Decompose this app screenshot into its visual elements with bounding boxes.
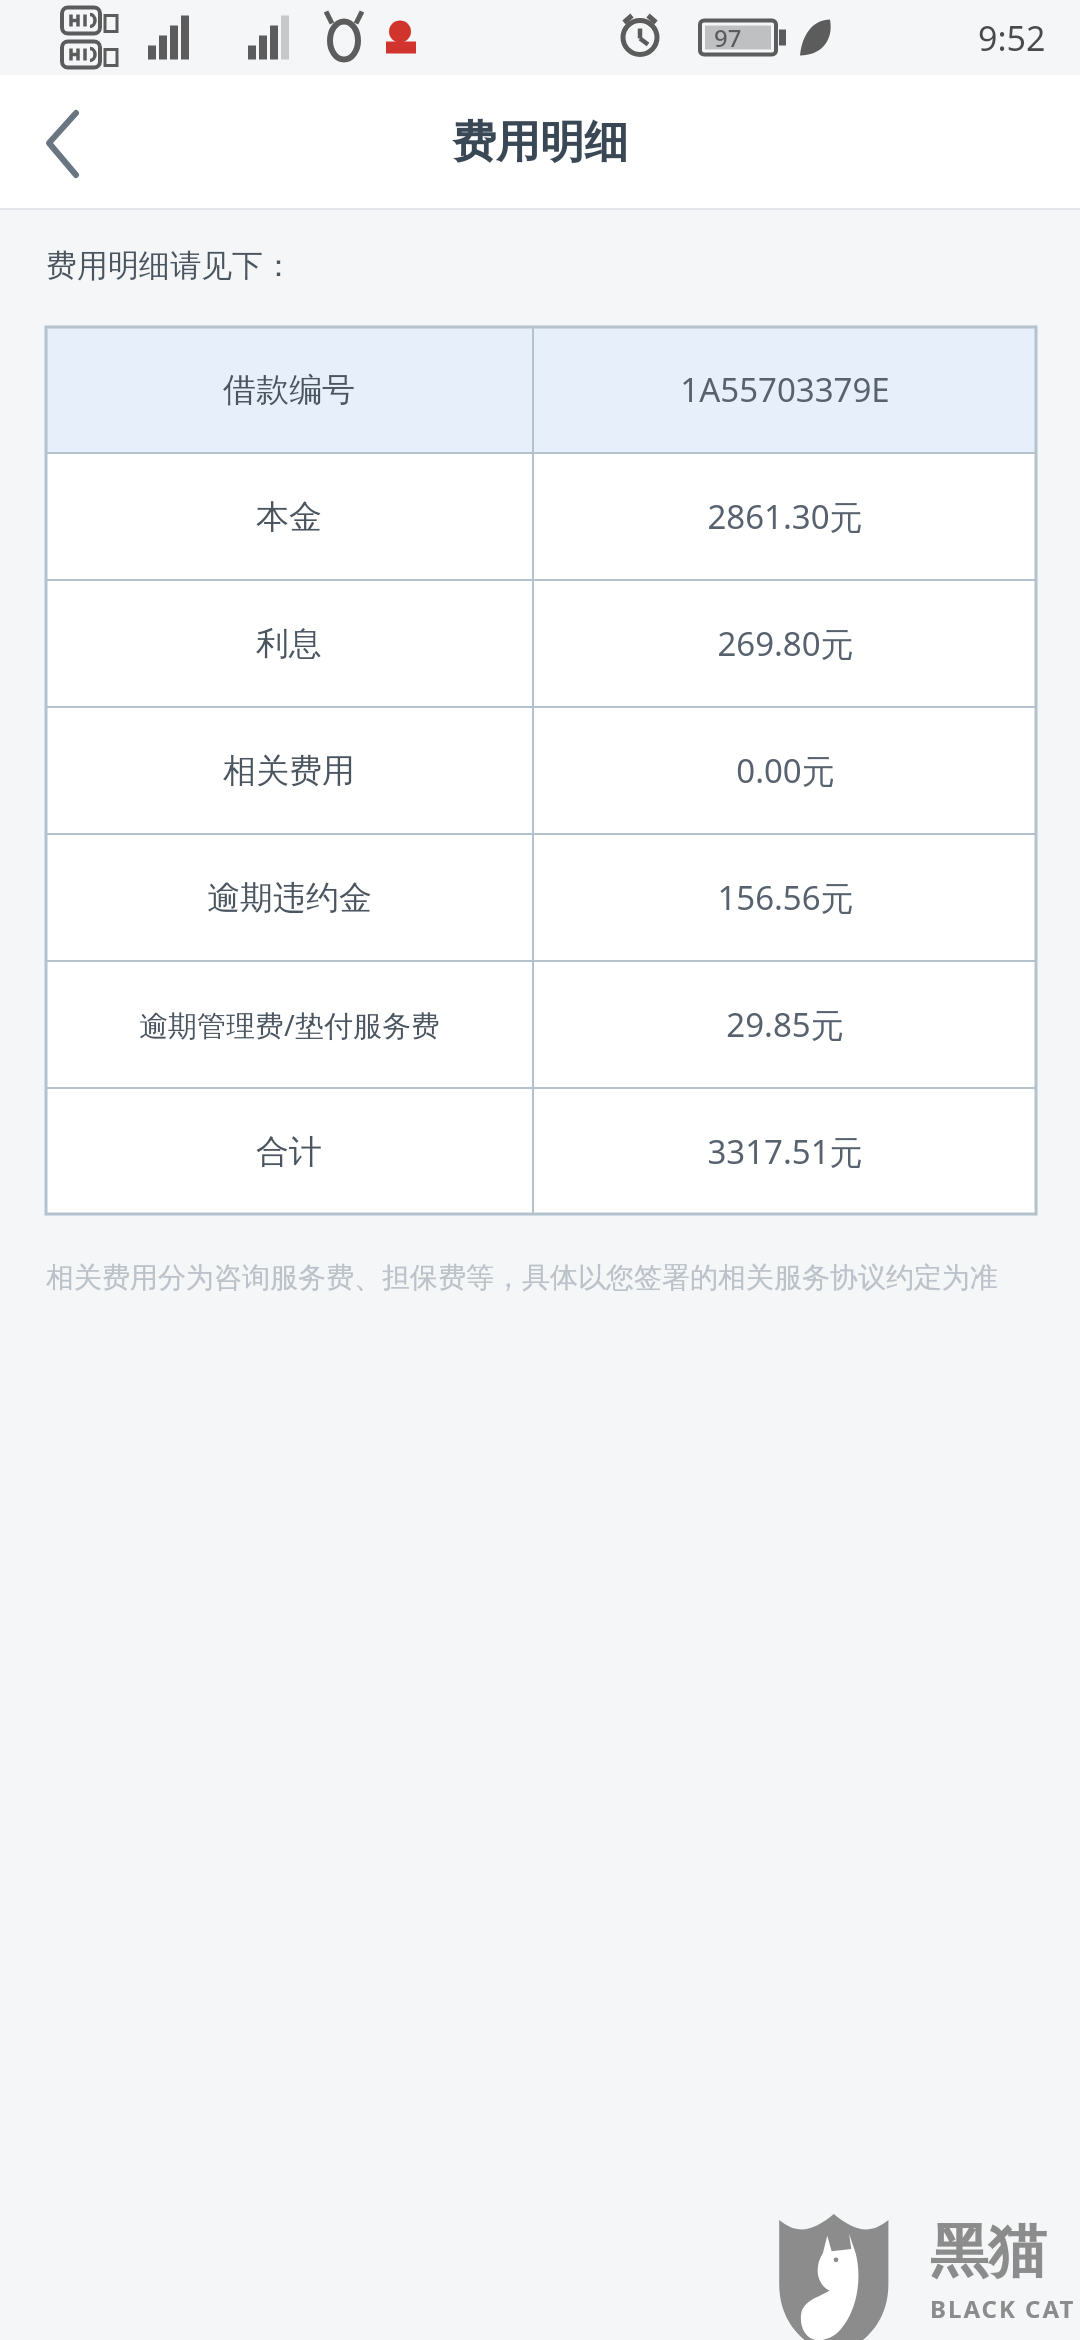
staticText: 借款编号	[223, 369, 355, 411]
button[interactable]: 合计	[46, 1089, 1036, 1214]
staticText: 9:52	[978, 15, 1046, 61]
staticText: 费用明细请见下：	[46, 246, 294, 285]
button[interactable]: Back	[14, 95, 110, 191]
staticText: 1A55703379E	[680, 367, 890, 412]
button[interactable]: 本金	[46, 454, 1036, 579]
staticText: 29.85元	[726, 1002, 844, 1047]
button[interactable]: 借款编号	[46, 327, 1036, 452]
button[interactable]: 利息	[46, 581, 1036, 706]
staticText: 156.56元	[717, 875, 854, 920]
staticText: 相关费用分为咨询服务费、担保费等，具体以您签署的相关服务协议约定为准	[46, 1260, 998, 1295]
staticText: 黑猫	[930, 2215, 1046, 2288]
button[interactable]: 逾期管理费/垫付服务费	[46, 962, 1036, 1087]
staticText: 269.80元	[717, 621, 854, 666]
staticText: BLACK CAT	[930, 2292, 1076, 2325]
staticText: 0.00元	[736, 748, 835, 793]
button[interactable]: 相关费用	[46, 708, 1036, 833]
button[interactable]: 逾期违约金	[46, 835, 1036, 960]
staticText: 费用明细	[452, 115, 628, 170]
staticText: 逾期管理费/垫付服务费	[139, 1005, 440, 1045]
staticText: 2861.30元	[707, 494, 863, 539]
staticText: 本金	[256, 496, 322, 538]
staticText: 合计	[256, 1131, 322, 1173]
staticText: 逾期违约金	[207, 877, 372, 919]
staticText: 利息	[256, 623, 322, 665]
staticText: 3317.51元	[707, 1129, 863, 1174]
staticText: 相关费用	[223, 750, 355, 792]
staticText: 97	[714, 21, 742, 54]
